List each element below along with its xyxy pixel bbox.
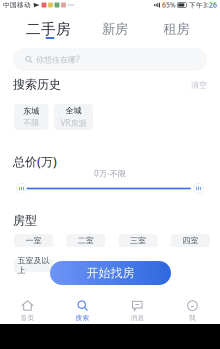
staticText: 东城 — [23, 106, 39, 116]
staticText: 搜索 — [75, 314, 89, 322]
button[interactable]: 五室及以上 — [14, 259, 53, 272]
staticText: 搜索历史 — [13, 77, 61, 92]
staticText: 下午3:26 — [189, 1, 217, 9]
button[interactable]: 清空 — [189, 80, 207, 90]
staticText: 二室 — [78, 236, 94, 245]
staticText: 总价(万) — [13, 153, 57, 169]
button[interactable]: 开始找房 — [50, 261, 171, 285]
staticText: 首页 — [20, 314, 34, 322]
button[interactable]: 租房 — [156, 22, 196, 36]
staticText: 一室 — [25, 236, 41, 245]
staticText: 房型 — [13, 213, 37, 228]
staticText: 清空 — [191, 80, 207, 90]
button[interactable]: 全城 — [54, 104, 93, 130]
staticText: 二手房 — [26, 20, 71, 38]
staticText: 全城 — [65, 106, 81, 116]
button[interactable]: 消息 — [110, 298, 165, 324]
staticText: 五室及以上 — [17, 256, 49, 275]
staticText: 租房 — [163, 21, 189, 37]
button[interactable]: 你想住在哪? — [13, 48, 207, 71]
button[interactable]: 搜索 — [55, 298, 110, 324]
button[interactable]: 一室 — [14, 234, 53, 247]
staticText: VR房源 — [60, 118, 86, 128]
staticText: 消息 — [130, 314, 144, 322]
button[interactable]: 三室 — [119, 234, 158, 247]
staticText: 新房 — [102, 21, 128, 37]
button[interactable]: 新房 — [95, 22, 135, 36]
staticText: 你想住在哪? — [36, 54, 79, 65]
staticText: 0万-不限 — [94, 168, 126, 179]
staticText: 三室 — [130, 236, 146, 245]
staticText: 开始找房 — [86, 266, 134, 280]
button[interactable]: 我 — [165, 298, 220, 324]
button[interactable]: 二手房 — [18, 21, 78, 37]
button[interactable]: 二室 — [66, 234, 105, 247]
staticText: 中国移动 — [3, 1, 31, 9]
button[interactable]: 四室 — [171, 234, 210, 247]
staticText: 我 — [189, 314, 196, 322]
button[interactable]: 首页 — [0, 298, 55, 324]
staticText: 四室 — [182, 236, 198, 245]
staticText: 不限 — [23, 118, 39, 128]
button[interactable]: 东城 — [14, 104, 48, 130]
staticText: 65% — [162, 1, 176, 9]
